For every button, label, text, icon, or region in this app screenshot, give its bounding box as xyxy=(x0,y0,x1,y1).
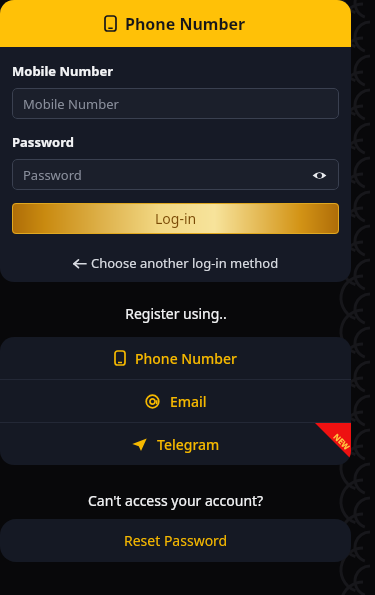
staticText: Password xyxy=(23,166,82,184)
staticText: Password xyxy=(12,133,74,151)
button[interactable]: Password xyxy=(12,159,339,190)
button[interactable]: Phone Number xyxy=(0,337,351,379)
button[interactable]: Log-in xyxy=(12,203,339,234)
staticText: Choose another log-in method xyxy=(91,254,279,272)
staticText: Email xyxy=(170,392,207,411)
staticText: Log-in xyxy=(155,209,197,228)
button[interactable]: Telegram xyxy=(0,423,351,465)
button[interactable]: Show password xyxy=(309,165,329,185)
button[interactable]: Choose another log-in method xyxy=(0,248,351,278)
staticText: Mobile Number xyxy=(12,62,113,80)
staticText: Register using.. xyxy=(125,304,227,323)
staticText: Reset Password xyxy=(124,531,228,550)
button[interactable]: Mobile Number xyxy=(12,88,339,119)
staticText: Telegram xyxy=(157,435,220,454)
staticText: Can't access your account? xyxy=(88,491,264,510)
staticText: Mobile Number xyxy=(23,95,119,113)
staticText: NEW xyxy=(331,431,351,452)
staticText: Phone Number xyxy=(135,349,237,368)
staticText: Phone Number xyxy=(125,13,246,35)
button[interactable]: Phone Number xyxy=(0,0,351,47)
button[interactable]: Email xyxy=(0,380,351,422)
button[interactable]: Reset Password xyxy=(0,519,351,562)
